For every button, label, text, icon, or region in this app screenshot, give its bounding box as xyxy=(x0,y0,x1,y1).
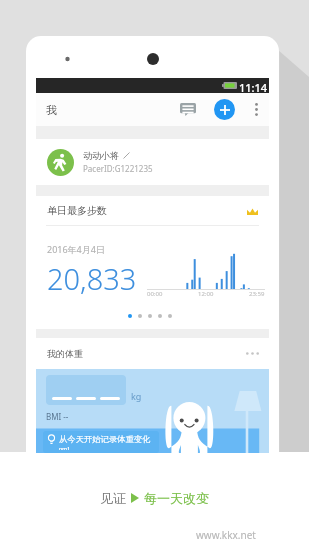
button[interactable]: 动动小将 xyxy=(47,139,269,185)
staticText: 单日最多步数 xyxy=(47,204,107,217)
button[interactable]: 从今天开始记录体重变化吧! xyxy=(43,431,159,453)
staticText: 23:59 xyxy=(249,290,265,298)
staticText: 我的体重 xyxy=(47,348,83,359)
staticText: 11:14 xyxy=(239,80,268,95)
button[interactable]: Add xyxy=(214,99,235,120)
button[interactable]: Messages xyxy=(174,95,201,124)
staticText: 00:00 xyxy=(147,290,163,298)
staticText: 动动小将 xyxy=(83,150,119,161)
staticText: 每一天改变 xyxy=(144,490,209,506)
staticText: www.kkx.net xyxy=(196,528,256,542)
staticText: 2016年4月4日 xyxy=(47,243,105,255)
staticText: 我 xyxy=(46,103,57,117)
staticText: 20,833 xyxy=(47,259,137,298)
button[interactable]: More options xyxy=(245,95,267,124)
staticText: kg xyxy=(131,390,142,402)
button[interactable]: Enter weight xyxy=(46,375,126,405)
staticText: BMI -- xyxy=(46,411,69,422)
staticText: 从今天开始记录体重变化吧! xyxy=(59,434,156,450)
staticText: 见证 xyxy=(100,490,126,506)
staticText: 12:00 xyxy=(198,290,214,298)
staticText: PacerID:G1221235 xyxy=(83,163,153,174)
